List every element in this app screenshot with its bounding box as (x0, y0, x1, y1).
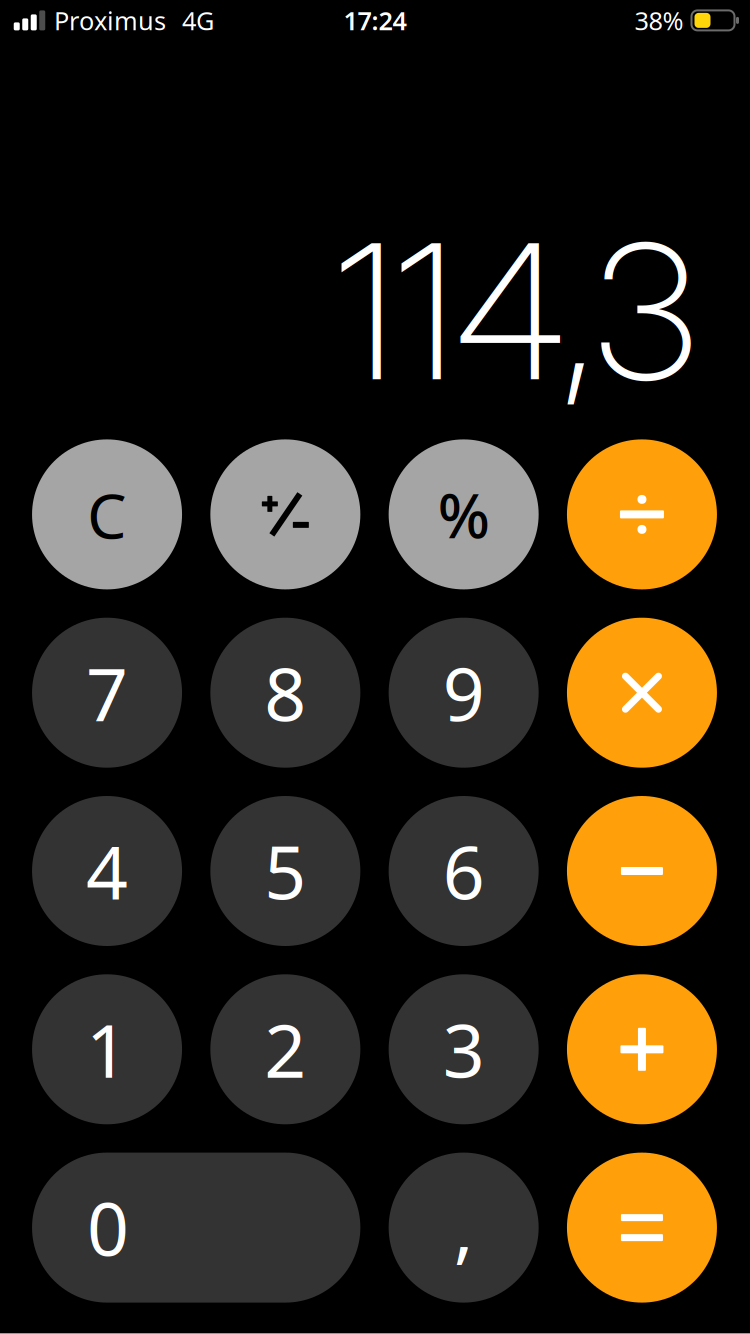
button[interactable]: Divide (567, 439, 717, 589)
staticText: C (87, 473, 127, 556)
staticText: 9 (443, 644, 485, 741)
button[interactable]: , (389, 1153, 539, 1303)
staticText: 7 (86, 644, 128, 741)
button[interactable]: 8 (210, 618, 360, 768)
button[interactable]: 4 (32, 796, 182, 946)
button[interactable]: 6 (389, 796, 539, 946)
staticText: 8 (264, 644, 306, 741)
staticText: 1 (86, 1001, 128, 1098)
staticText: 5 (264, 822, 306, 920)
staticText: , (454, 1179, 474, 1276)
button[interactable]: 0 (32, 1153, 360, 1303)
button[interactable]: % (389, 439, 539, 589)
staticText: 114,3 (335, 198, 697, 424)
button[interactable]: Multiply (567, 618, 717, 768)
staticText: Proximus (54, 4, 166, 37)
button[interactable]: 3 (389, 974, 539, 1124)
staticText: 4G (182, 4, 214, 37)
staticText: % (438, 474, 490, 555)
staticText: 17:24 (343, 4, 406, 37)
button[interactable]: Add (567, 974, 717, 1124)
button[interactable]: 5 (210, 796, 360, 946)
button[interactable]: 9 (389, 618, 539, 768)
button[interactable]: 1 (32, 974, 182, 1124)
button[interactable]: Equals (567, 1153, 717, 1303)
staticText: 3 (443, 1001, 485, 1098)
staticText: 4 (86, 822, 128, 920)
button[interactable]: Subtract (567, 796, 717, 946)
button[interactable]: 2 (210, 974, 360, 1124)
button[interactable]: 7 (32, 618, 182, 768)
staticText: 38% (634, 4, 683, 37)
button[interactable]: C (32, 439, 182, 589)
staticText: 6 (443, 822, 485, 920)
staticText: 2 (264, 1001, 306, 1098)
staticText: 0 (87, 1179, 129, 1276)
button[interactable]: Toggle sign (210, 439, 360, 589)
